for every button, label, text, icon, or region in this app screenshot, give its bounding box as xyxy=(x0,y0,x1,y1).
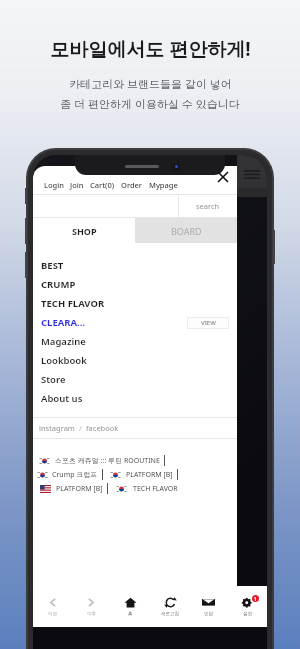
staticText: About us xyxy=(41,392,83,405)
button[interactable]: SHOP xyxy=(33,218,135,243)
staticText: Magazine xyxy=(41,335,86,348)
button[interactable]: TECH FLAVOR xyxy=(133,484,178,494)
staticText: Login xyxy=(44,180,64,190)
staticText: Store xyxy=(41,373,66,386)
staticText: 스포츠 캐쥬얼 ::: 루틴 ROOUTINE xyxy=(55,456,160,466)
staticText: CLEARA... xyxy=(41,316,86,329)
staticText: 인담 xyxy=(204,611,213,617)
button[interactable]: 스포츠 캐쥬얼 ::: 루틴 ROOUTINE xyxy=(55,456,160,466)
staticText: SHOP xyxy=(72,225,97,237)
button[interactable]: TECH FLAVOR xyxy=(33,294,237,313)
staticText: 카테고리와 브랜드들을 같이 넣어 xyxy=(69,76,232,91)
button[interactable]: Magazine xyxy=(33,332,237,351)
button[interactable]: Menu xyxy=(242,167,262,181)
staticText: 홈 xyxy=(128,611,133,617)
button[interactable]: instagram xyxy=(39,423,75,433)
button[interactable]: BOARD xyxy=(135,218,237,243)
button[interactable]: About us xyxy=(33,389,237,408)
button[interactable]: VIEW xyxy=(187,317,229,329)
button[interactable]: 새로고침 xyxy=(150,586,189,627)
button[interactable]: 이전 xyxy=(33,586,72,627)
button[interactable]: PLATFORM [B] xyxy=(56,484,103,494)
staticText: BEST xyxy=(41,259,64,272)
staticText: Order xyxy=(121,180,143,190)
button[interactable]: CLEARA... xyxy=(33,313,237,332)
staticText: 새로고침 xyxy=(161,611,179,617)
button[interactable]: Store xyxy=(33,370,237,389)
button[interactable]: BEST xyxy=(33,256,237,275)
staticText: instagram xyxy=(39,423,75,433)
staticText: PLATFORM [B] xyxy=(56,484,103,494)
button[interactable]: Join xyxy=(67,180,87,190)
button[interactable]: Login xyxy=(41,180,67,190)
staticText: 좀 더 편안하게 이용하실 수 있습니다 xyxy=(60,96,240,111)
button[interactable]: Lookbook xyxy=(33,351,237,370)
staticText: / xyxy=(75,423,86,433)
staticText: PLATFORM [B] xyxy=(126,470,173,480)
staticText: 이전 xyxy=(48,611,57,617)
button[interactable]: Order xyxy=(118,180,146,190)
button[interactable]: 홈 xyxy=(111,586,150,627)
staticText: Join xyxy=(70,180,84,190)
button[interactable]: Crump 크럼프 xyxy=(52,470,98,480)
button[interactable]: CRUMP xyxy=(33,275,237,294)
button[interactable]: 인담 xyxy=(189,586,228,627)
staticText: CRUMP xyxy=(41,278,76,291)
staticText: Cart(0) xyxy=(90,180,115,190)
staticText: TECH FLAVOR xyxy=(133,484,178,494)
staticText: facebook xyxy=(86,423,119,433)
staticText: BOARD xyxy=(171,225,202,237)
button[interactable]: Close xyxy=(213,167,233,187)
staticText: 설정 xyxy=(243,611,252,617)
staticText: Lookbook xyxy=(41,354,87,367)
staticText: search xyxy=(196,201,220,211)
button[interactable]: 설정 xyxy=(228,586,267,627)
staticText: Mypage xyxy=(149,180,178,190)
button[interactable]: facebook xyxy=(86,423,119,433)
button[interactable]: Mypage xyxy=(146,180,181,190)
button[interactable]: search xyxy=(179,195,237,217)
staticText: 1 xyxy=(254,596,257,602)
button[interactable]: PLATFORM [B] xyxy=(126,470,173,480)
button[interactable]: 이후 xyxy=(72,586,111,627)
staticText: 모바일에서도 편안하게! xyxy=(50,36,251,62)
staticText: Crump 크럼프 xyxy=(52,470,98,480)
staticText: 이후 xyxy=(87,611,96,617)
staticText: VIEW xyxy=(201,319,216,327)
staticText: TECH FLAVOR xyxy=(41,297,105,310)
button[interactable]: Cart(0) xyxy=(87,180,118,190)
